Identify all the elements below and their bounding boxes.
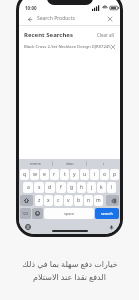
staticText: s bbox=[38, 184, 41, 191]
staticText: v bbox=[67, 197, 70, 204]
button[interactable]: Black Cross 2-Set Necklace Design DJR072… bbox=[19, 41, 120, 52]
button[interactable]: Shift bbox=[20, 195, 33, 206]
staticText: k bbox=[100, 184, 103, 191]
button[interactable]: Numbers bbox=[20, 208, 31, 219]
staticText: x bbox=[47, 197, 50, 204]
button[interactable]: f bbox=[56, 182, 66, 193]
staticText: n bbox=[87, 197, 91, 204]
staticText: f bbox=[60, 184, 62, 191]
staticText: 123 bbox=[22, 211, 29, 216]
button[interactable]: Search Products bbox=[37, 15, 105, 22]
button[interactable]: i bbox=[90, 169, 99, 180]
button[interactable]: search bbox=[95, 208, 119, 219]
staticText: i bbox=[94, 171, 96, 178]
staticText: 10:00 bbox=[25, 5, 37, 11]
button[interactable]: o bbox=[100, 169, 109, 180]
staticText: a bbox=[27, 184, 30, 191]
staticText: Search Products bbox=[37, 15, 75, 22]
staticText: h bbox=[80, 184, 84, 191]
staticText: e bbox=[43, 171, 46, 178]
button[interactable]: t bbox=[60, 169, 69, 180]
button[interactable]: s bbox=[34, 182, 44, 193]
staticText: j bbox=[91, 184, 93, 191]
button[interactable]: r bbox=[50, 169, 59, 180]
staticText: search bbox=[101, 211, 113, 216]
staticText: i bbox=[103, 161, 105, 167]
staticText: b bbox=[77, 197, 81, 204]
staticText: m bbox=[96, 197, 101, 204]
button[interactable]: x bbox=[44, 195, 53, 206]
staticText: dan bbox=[66, 161, 74, 167]
button[interactable]: m bbox=[94, 195, 103, 206]
button[interactable]: Back bbox=[24, 14, 34, 24]
button[interactable]: e bbox=[40, 169, 49, 180]
button[interactable]: v bbox=[64, 195, 73, 206]
staticText: q bbox=[23, 171, 27, 178]
button[interactable]: j bbox=[87, 182, 96, 193]
button[interactable]: Remove bbox=[111, 43, 115, 51]
button[interactable]: c bbox=[54, 195, 63, 206]
staticText: Black Cross 2-Set Necklace Design DJR072… bbox=[24, 44, 111, 50]
staticText: y bbox=[73, 171, 76, 178]
staticText: z bbox=[38, 197, 41, 204]
button[interactable]: k bbox=[97, 182, 106, 193]
staticText: u bbox=[83, 171, 87, 178]
staticText: o bbox=[103, 171, 107, 178]
button[interactable]: b bbox=[74, 195, 83, 206]
button[interactable]: Emoji bbox=[32, 208, 43, 219]
button[interactable]: q bbox=[20, 169, 29, 180]
button[interactable]: l bbox=[107, 182, 116, 193]
staticText: Recent Searches bbox=[24, 31, 73, 39]
staticText: g bbox=[70, 184, 74, 191]
button[interactable]: y bbox=[70, 169, 79, 180]
button[interactable]: u bbox=[80, 169, 89, 180]
button[interactable]: Backspace bbox=[106, 195, 119, 206]
button[interactable]: a bbox=[23, 182, 33, 193]
staticText: c bbox=[57, 197, 60, 204]
button[interactable]: dan bbox=[53, 159, 86, 168]
button[interactable]: Clear search bbox=[105, 14, 115, 24]
button[interactable]: mens bbox=[19, 159, 52, 168]
button[interactable]: p bbox=[110, 169, 119, 180]
staticText: الدفع نقدا عند الاستلام bbox=[33, 271, 106, 282]
button[interactable]: Voice input bbox=[107, 223, 115, 231]
staticText: خيارات دفع سهلة بما في ذلك bbox=[22, 258, 118, 269]
staticText: l bbox=[111, 184, 113, 191]
staticText: space bbox=[64, 211, 75, 216]
button[interactable]: g bbox=[67, 182, 76, 193]
staticText: p bbox=[113, 171, 117, 178]
button[interactable]: w bbox=[30, 169, 39, 180]
button[interactable]: n bbox=[84, 195, 93, 206]
staticText: mens bbox=[30, 161, 41, 167]
button[interactable]: d bbox=[45, 182, 55, 193]
button[interactable]: Change keyboard bbox=[24, 223, 32, 231]
staticText: d bbox=[48, 184, 52, 191]
button[interactable]: z bbox=[35, 195, 43, 206]
staticText: w bbox=[33, 171, 37, 178]
button[interactable]: i bbox=[87, 159, 120, 168]
staticText: t bbox=[64, 171, 66, 178]
button[interactable]: Clear all bbox=[96, 31, 115, 39]
button[interactable]: space bbox=[44, 208, 94, 219]
button[interactable]: h bbox=[77, 182, 86, 193]
staticText: Clear all bbox=[97, 32, 114, 38]
staticText: r bbox=[53, 171, 56, 178]
